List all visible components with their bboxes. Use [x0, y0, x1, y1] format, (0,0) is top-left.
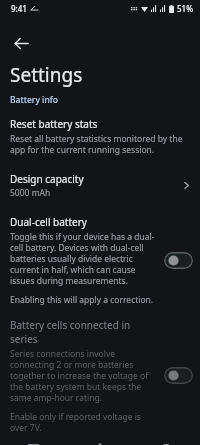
staticText: Reset all battery statistics monitored b…: [10, 133, 188, 155]
button[interactable]: Reset battery stats: [0, 115, 200, 157]
staticText: Settings: [10, 62, 83, 88]
button[interactable]: Dual-cell battery: [0, 213, 200, 308]
staticText: Enable only if reported voltage is over …: [10, 411, 158, 433]
button[interactable]: Toggle: [164, 252, 193, 269]
staticText: 9:41: [11, 3, 27, 14]
staticText: Reset battery stats: [10, 117, 98, 131]
staticText: Enabling this will apply a correction.: [10, 294, 154, 306]
staticText: 51%: [177, 3, 193, 14]
button[interactable]: Battery cells connected in series: [0, 316, 200, 435]
staticText: Series connections involve connecting 2 …: [10, 348, 158, 403]
staticText: Battery cells connected in series: [10, 318, 158, 346]
staticText: Dual-cell battery: [10, 215, 87, 229]
button[interactable]: Toggle: [164, 367, 193, 384]
staticText: Toggle this if your device has a dual-ce…: [10, 231, 158, 286]
staticText: 5000 mAh: [10, 187, 51, 199]
button[interactable]: Design capacity: [0, 170, 200, 201]
staticText: Battery info: [10, 94, 58, 106]
staticText: Design capacity: [10, 172, 84, 186]
button[interactable]: Back: [4, 26, 38, 60]
